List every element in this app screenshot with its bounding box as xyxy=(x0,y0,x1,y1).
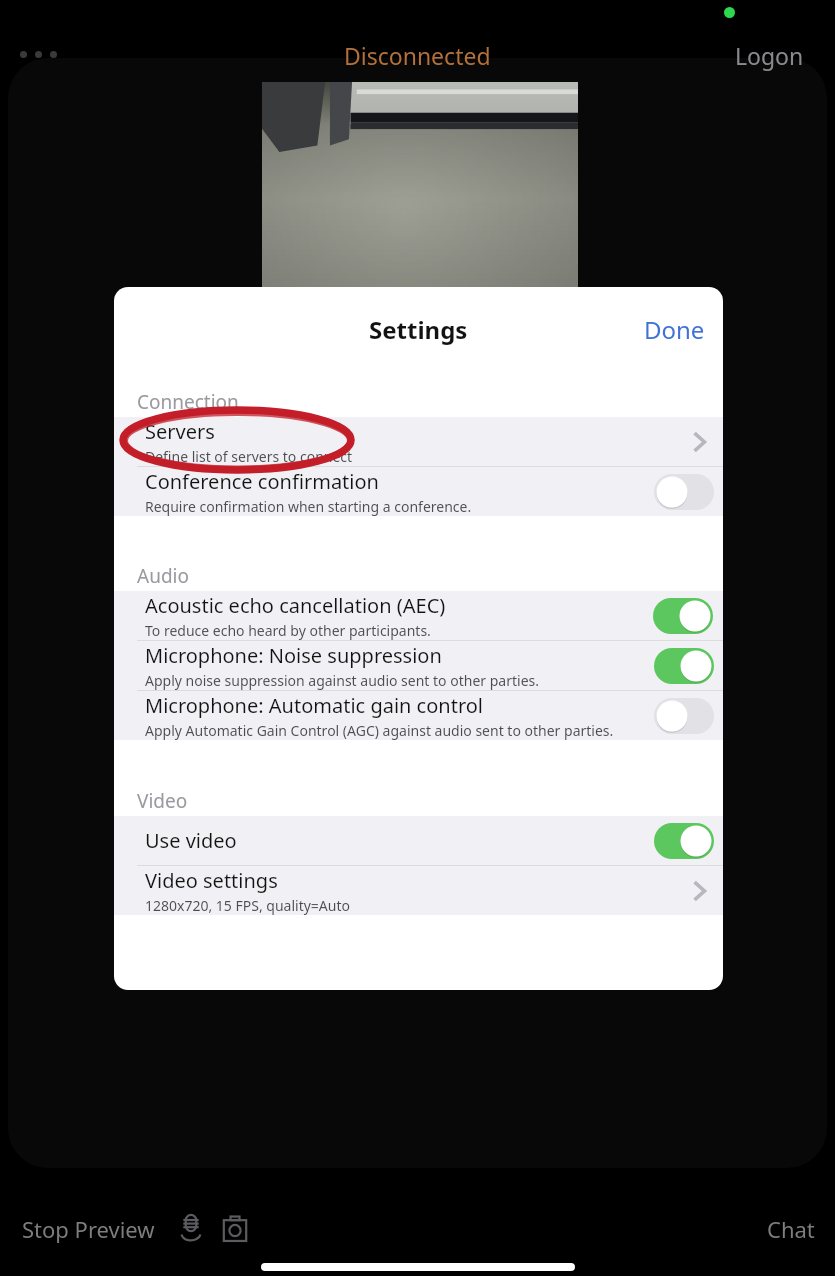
button[interactable]: Video settings xyxy=(114,866,723,915)
staticText: Use video xyxy=(145,827,237,854)
staticText: To reduce echo heard by other participan… xyxy=(145,621,431,640)
staticText: Audio xyxy=(137,563,189,589)
staticText: Chat xyxy=(767,1214,815,1244)
staticText: Apply Automatic Gain Control (AGC) again… xyxy=(145,721,614,740)
button[interactable]: Microphone: Automatic gain control xyxy=(114,691,723,740)
staticText: Require confirmation when starting a con… xyxy=(145,497,472,516)
staticText: Connection xyxy=(137,389,239,415)
button[interactable]: Servers xyxy=(114,417,723,466)
button[interactable]: On xyxy=(654,648,714,684)
staticText: Conference confirmation xyxy=(145,468,379,495)
staticText: Logon xyxy=(735,40,804,71)
staticText: Settings xyxy=(369,313,468,346)
staticText: Video settings xyxy=(145,867,278,894)
staticText: Video xyxy=(137,788,188,814)
button[interactable]: Logon xyxy=(735,36,825,74)
button[interactable]: Camera xyxy=(215,1209,255,1249)
button[interactable]: Acoustic echo cancellation (AEC) xyxy=(114,591,723,640)
staticText: Apply noise suppression against audio se… xyxy=(145,671,539,690)
button[interactable]: Use video xyxy=(114,816,723,865)
button[interactable]: Stop Preview xyxy=(18,1208,159,1250)
button[interactable]: On xyxy=(653,598,713,634)
button[interactable]: More options xyxy=(10,36,66,72)
button[interactable]: Microphone xyxy=(171,1209,211,1249)
staticText: Acoustic echo cancellation (AEC) xyxy=(145,592,446,619)
button[interactable]: Off xyxy=(654,698,714,734)
staticText: Stop Preview xyxy=(22,1214,155,1244)
staticText: Done xyxy=(644,313,705,346)
staticText: Microphone: Noise suppression xyxy=(145,642,442,669)
staticText: Define list of servers to connect xyxy=(145,447,353,466)
button[interactable]: Chat xyxy=(761,1208,821,1250)
staticText: 1280x720, 15 FPS, quality=Auto xyxy=(145,896,350,915)
staticText: Microphone: Automatic gain control xyxy=(145,692,484,719)
button[interactable]: On xyxy=(654,823,714,859)
staticText: Disconnected xyxy=(344,40,491,71)
button[interactable]: Done xyxy=(625,305,723,353)
button[interactable]: Off xyxy=(654,474,714,510)
button[interactable]: Microphone: Noise suppression xyxy=(114,641,723,690)
button[interactable]: Conference confirmation xyxy=(114,467,723,516)
staticText: Servers xyxy=(145,418,215,445)
